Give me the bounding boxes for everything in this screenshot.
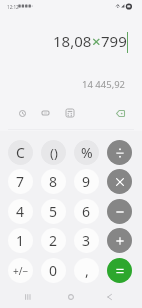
staticText: % (81, 143, 93, 162)
staticText: 0 (49, 261, 58, 280)
button[interactable]: 4 (8, 199, 33, 224)
button[interactable]: 3 (74, 228, 99, 253)
staticText: 2 (49, 231, 58, 250)
button[interactable]: Back (101, 289, 117, 305)
button[interactable]: 0 (41, 258, 66, 283)
button[interactable]: 9 (74, 169, 99, 194)
staticText: 9 (82, 172, 91, 191)
staticText: 5 (49, 202, 58, 221)
button[interactable]: Backspace (112, 105, 128, 121)
button[interactable] (107, 169, 132, 194)
staticText: () (50, 144, 58, 162)
staticText: 8 (49, 172, 58, 191)
button[interactable]: 2 (41, 228, 66, 253)
button[interactable]: 5 (41, 199, 66, 224)
button[interactable]: Recent apps (20, 289, 36, 305)
staticText: 799 (101, 31, 127, 51)
button[interactable]: Home (63, 289, 79, 305)
staticText: +/− (13, 264, 29, 278)
button[interactable]: % (74, 140, 99, 165)
staticText: 12:12 (7, 4, 19, 10)
staticText: 14 445,92 (82, 78, 126, 91)
staticText: 7 (16, 172, 25, 191)
staticText: 1 (16, 231, 25, 250)
button[interactable]: +/− (8, 258, 33, 283)
button[interactable] (107, 258, 132, 283)
button[interactable]: 6 (74, 199, 99, 224)
button[interactable]: History (14, 105, 30, 121)
staticText: , (85, 261, 89, 280)
button[interactable]: Unit converter (37, 105, 53, 121)
staticText: 6 (82, 202, 91, 221)
staticText: × (92, 31, 101, 51)
button[interactable]: C (8, 140, 33, 165)
button[interactable]: () (41, 140, 66, 165)
button[interactable]: 7 (8, 169, 33, 194)
button[interactable] (107, 228, 132, 253)
button[interactable]: , (74, 258, 99, 283)
staticText: C (16, 143, 25, 162)
button[interactable] (107, 140, 132, 165)
button[interactable]: Calculator (62, 105, 78, 121)
staticText: 3 (82, 231, 91, 250)
button[interactable]: 8 (41, 169, 66, 194)
staticText: 18,08 (53, 31, 92, 51)
button[interactable] (107, 199, 132, 224)
button[interactable]: 1 (8, 228, 33, 253)
staticText: 4 (16, 202, 25, 221)
